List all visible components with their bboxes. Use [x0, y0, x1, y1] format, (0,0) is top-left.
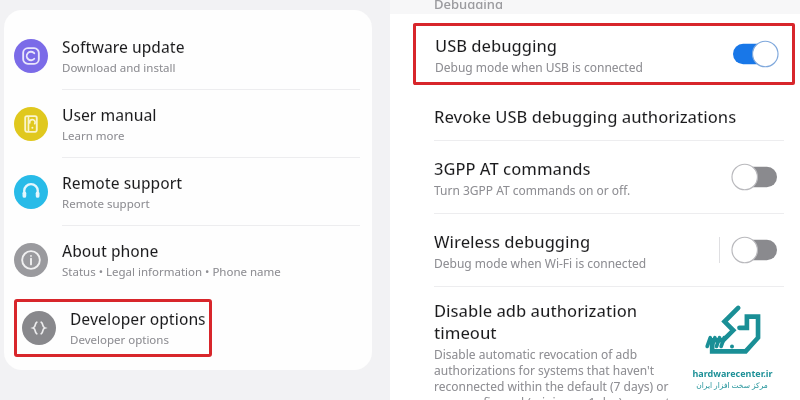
button[interactable]: Software update — [0, 22, 390, 89]
staticText: Remote support — [62, 196, 150, 212]
staticText: USB debugging — [435, 34, 558, 56]
button[interactable]: Disable adb authorization timeout — [390, 287, 680, 400]
staticText: Download and install — [62, 60, 176, 76]
staticText: Software update — [62, 36, 185, 57]
button[interactable]: Toggle on — [733, 41, 777, 67]
button[interactable]: 3GPP AT commands — [390, 141, 800, 213]
staticText: مرکز سخت افزار ایران — [696, 380, 768, 390]
staticText: Disable automatic revocation of adb auth… — [434, 346, 674, 400]
staticText: Disable adb authorization timeout — [434, 299, 674, 343]
button[interactable]: Toggle off — [733, 164, 777, 190]
button[interactable]: Wireless debugging — [390, 214, 800, 286]
staticText: Developer options — [70, 332, 169, 348]
staticText: Learn more — [62, 128, 125, 144]
staticText: hardwarecenter.ir — [692, 367, 773, 379]
staticText: Debugging — [434, 0, 504, 9]
button[interactable]: USB debugging — [413, 23, 795, 85]
staticText: Debug mode when Wi-Fi is connected — [434, 255, 647, 271]
staticText: Revoke USB debugging authorizations — [434, 105, 737, 127]
button[interactable]: Developer options — [14, 299, 212, 357]
button[interactable]: Revoke USB debugging authorizations — [390, 92, 800, 140]
staticText: 3GPP AT commands — [434, 157, 591, 179]
button[interactable]: About phone — [0, 226, 390, 293]
button[interactable]: Toggle off — [733, 237, 777, 263]
staticText: Status • Legal information • Phone name — [62, 264, 281, 280]
staticText: Wireless debugging — [434, 230, 591, 252]
button[interactable]: Remote support — [0, 158, 390, 225]
staticText: Developer options — [70, 308, 206, 329]
staticText: Remote support — [62, 172, 183, 193]
button[interactable]: User manual — [0, 90, 390, 157]
staticText: Debug mode when USB is connected — [435, 59, 643, 75]
staticText: Turn 3GPP AT commands on or off. — [434, 182, 631, 198]
staticText: About phone — [62, 240, 159, 261]
staticText: User manual — [62, 104, 157, 125]
